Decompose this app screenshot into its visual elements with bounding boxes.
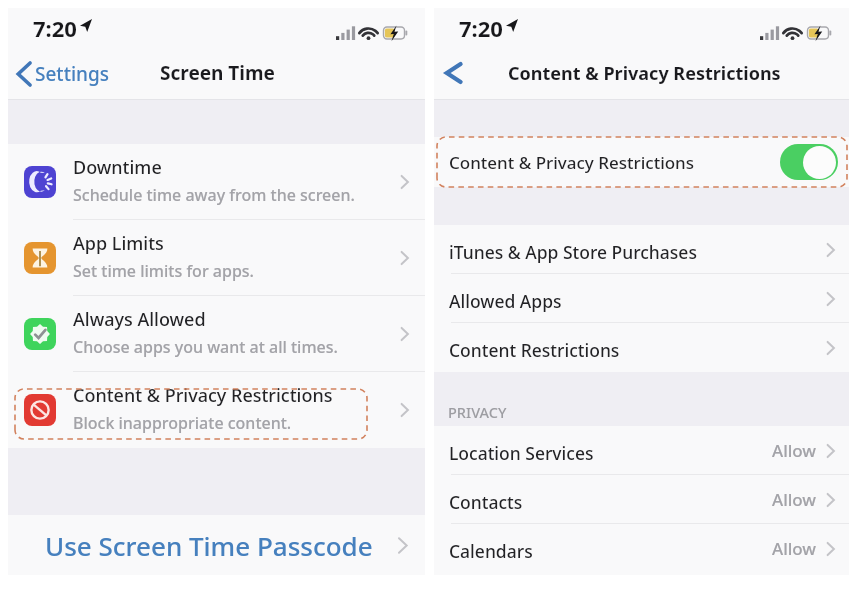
staticText: Screen Time — [160, 60, 275, 86]
button[interactable]: Back — [439, 57, 469, 89]
button[interactable]: Content & Privacy Restrictions toggle, o… — [780, 144, 838, 180]
button[interactable]: Settings — [16, 61, 109, 87]
button[interactable]: iTunes & App Store Purchases — [434, 225, 849, 274]
staticText: Always Allowed — [73, 307, 206, 332]
staticText: Allow — [772, 488, 817, 511]
button[interactable]: Calendars — [434, 524, 849, 573]
staticText: Use Screen Time Passcode — [45, 528, 373, 563]
staticText: Calendars — [449, 539, 533, 563]
staticText: Block inappropriate content. — [73, 412, 292, 434]
staticText: Downtime — [73, 155, 162, 180]
staticText: Settings — [35, 61, 109, 87]
staticText: Set time limits for apps. — [73, 260, 254, 282]
staticText: Content Restrictions — [449, 338, 620, 362]
staticText: Content & Privacy Restrictions — [449, 151, 695, 174]
staticText: 7:20 — [33, 13, 77, 43]
button[interactable]: Content & Privacy Restrictions — [434, 137, 849, 187]
button[interactable]: Location Services — [434, 426, 849, 475]
staticText: Choose apps you want at all times. — [73, 336, 338, 358]
button[interactable]: Always Allowed — [8, 296, 425, 372]
button[interactable]: Content Restrictions — [434, 323, 849, 372]
staticText: Content & Privacy Restrictions — [508, 61, 781, 86]
staticText: Contacts — [449, 490, 523, 514]
staticText: Allowed Apps — [449, 289, 562, 313]
staticText: PRIVACY — [448, 402, 507, 422]
staticText: Allow — [772, 537, 817, 560]
button[interactable]: Contacts — [434, 475, 849, 524]
staticText: Content & Privacy Restrictions — [73, 383, 333, 408]
staticText: Allow — [772, 439, 817, 462]
staticText: 7:20 — [459, 13, 503, 43]
staticText: Location Services — [449, 441, 594, 465]
staticText: Schedule time away from the screen. — [73, 184, 355, 206]
button[interactable]: Use Screen Time Passcode — [8, 515, 425, 575]
button[interactable]: App Limits — [8, 220, 425, 296]
staticText: iTunes & App Store Purchases — [449, 240, 697, 264]
button[interactable]: Content & Privacy Restrictions — [8, 372, 425, 448]
staticText: App Limits — [73, 231, 164, 256]
button[interactable]: Allowed Apps — [434, 274, 849, 323]
button[interactable]: Downtime — [8, 144, 425, 220]
